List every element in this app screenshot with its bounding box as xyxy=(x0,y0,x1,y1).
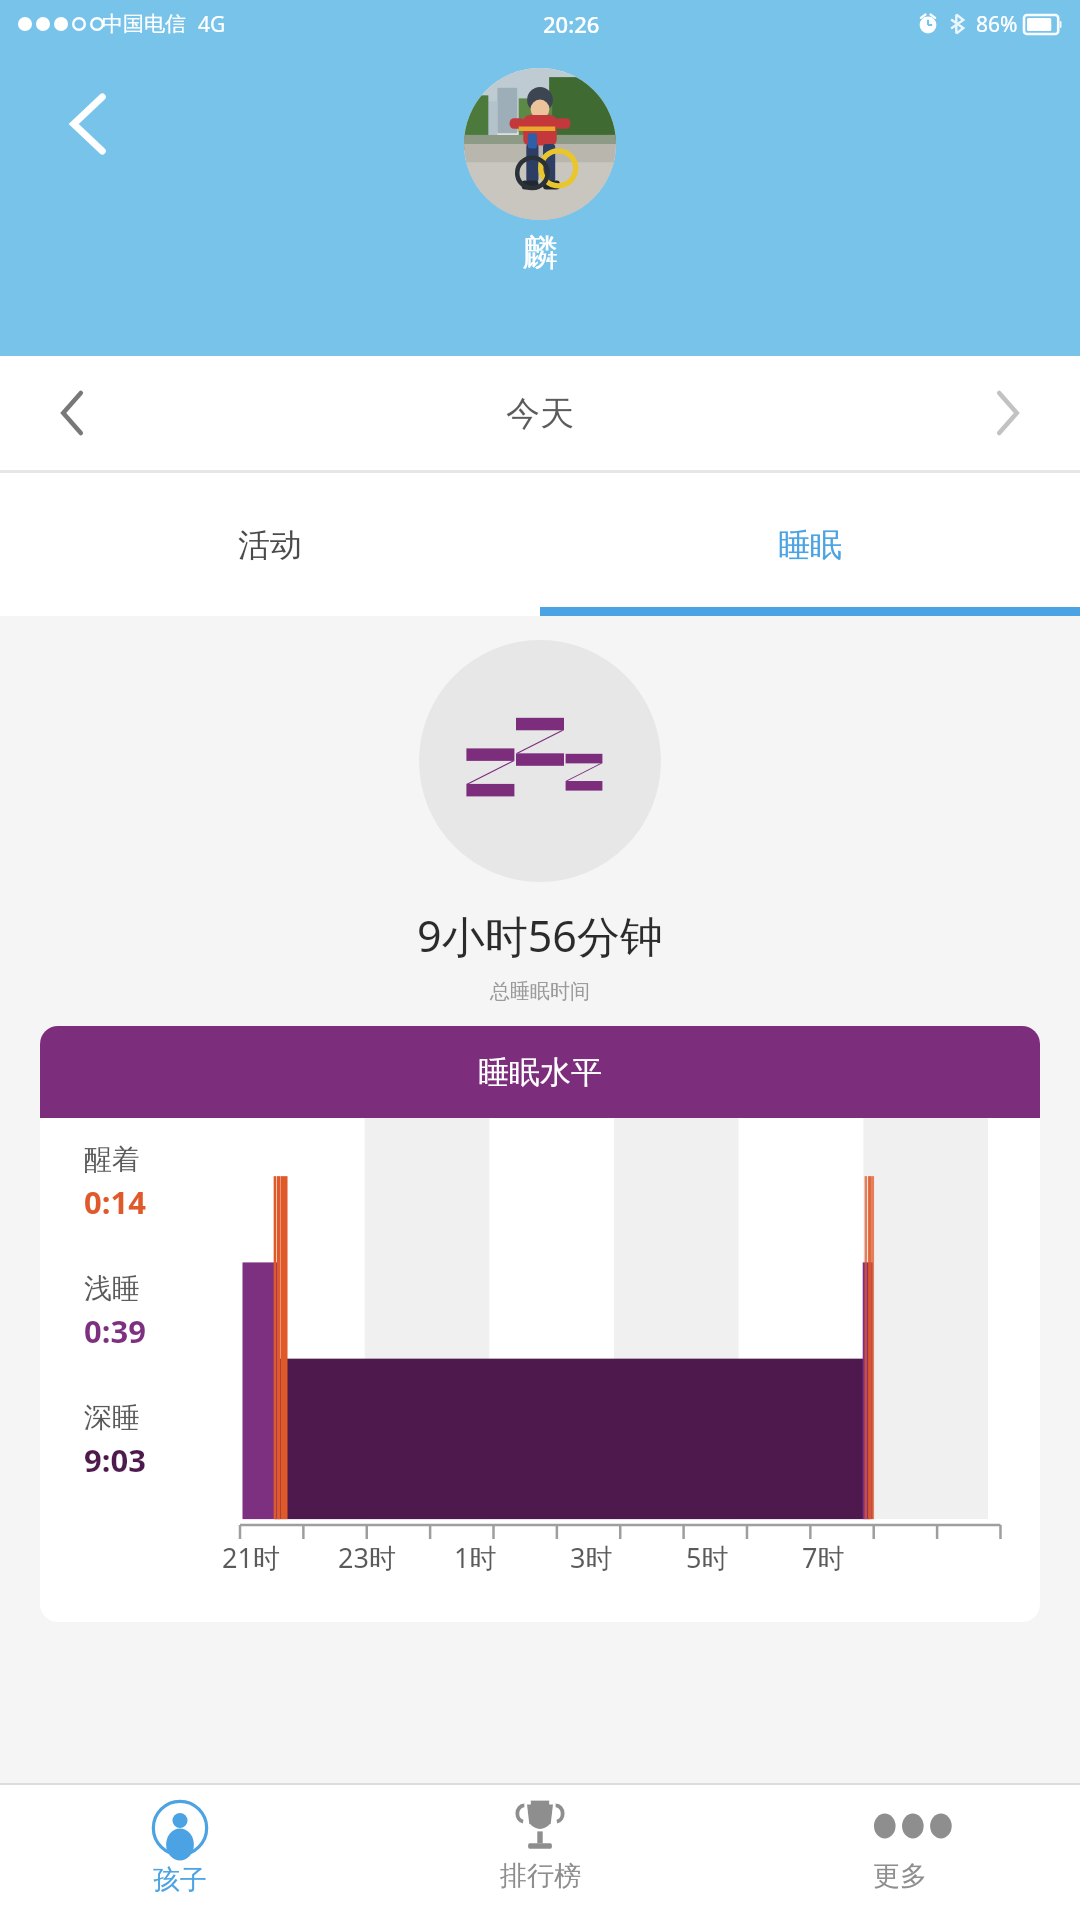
staticText: 0:39 xyxy=(84,1310,146,1352)
button[interactable]: Next day xyxy=(972,377,1044,449)
staticText: 深睡 xyxy=(84,1400,140,1435)
staticText: 睡眠 xyxy=(778,525,842,565)
button[interactable]: 睡眠 xyxy=(540,473,1080,616)
staticText: 86% xyxy=(976,10,1018,39)
button[interactable]: 活动 xyxy=(0,473,540,616)
staticText: 更多 xyxy=(873,1859,927,1893)
staticText: 0:14 xyxy=(84,1181,146,1223)
staticText: 浅睡 xyxy=(84,1271,140,1306)
staticText: 麟 xyxy=(522,230,558,275)
staticText: 23时 xyxy=(338,1539,396,1576)
staticText: 睡眠水平 xyxy=(478,1053,602,1092)
staticText: 孩子 xyxy=(153,1863,207,1897)
staticText: 排行榜 xyxy=(500,1859,581,1893)
staticText: 今天 xyxy=(506,392,574,435)
button[interactable]: 更多 xyxy=(720,1785,1080,1920)
staticText: 5时 xyxy=(686,1539,729,1576)
button[interactable]: 排行榜 xyxy=(360,1785,720,1920)
button[interactable]: Profile photo xyxy=(464,68,616,220)
button[interactable]: 孩子 xyxy=(0,1785,360,1920)
staticText: 7时 xyxy=(802,1539,845,1576)
staticText: 9:03 xyxy=(84,1439,146,1481)
staticText: 中国电信 xyxy=(102,11,186,37)
staticText: 21时 xyxy=(222,1539,280,1576)
staticText: 醒着 xyxy=(84,1142,140,1177)
staticText: 活动 xyxy=(238,525,302,565)
staticText: 3时 xyxy=(570,1539,613,1576)
button[interactable]: Back xyxy=(52,88,124,160)
button[interactable]: Previous day xyxy=(36,377,108,449)
staticText: 9小时56分钟 xyxy=(0,906,1080,965)
staticText: 总睡眠时间 xyxy=(0,979,1080,1004)
staticText: 1时 xyxy=(454,1539,497,1576)
staticText: 4G xyxy=(198,10,226,39)
staticText: 20:26 xyxy=(543,9,600,39)
